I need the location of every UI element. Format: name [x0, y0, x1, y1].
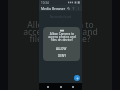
button[interactable]: ALLOW [43, 46, 80, 51]
staticText: 10:34 [41, 1, 49, 5]
staticText: No media found [50, 15, 72, 19]
staticText: DENY [58, 54, 66, 58]
button[interactable]: Filter [71, 6, 76, 11]
staticText: ALLOW [56, 47, 67, 51]
button[interactable]: Recents [70, 84, 76, 90]
staticText: files on device? [29, 33, 91, 45]
button[interactable]: More options [76, 6, 81, 11]
staticText: Allow Camera to access photos and files … [48, 32, 76, 42]
button[interactable]: DENY [43, 53, 80, 58]
button[interactable]: Home [58, 84, 64, 90]
staticText: access photos and [23, 26, 98, 38]
button[interactable]: Add [74, 75, 80, 81]
staticText: Media Browser [41, 6, 66, 11]
button[interactable]: Back [45, 84, 51, 90]
staticText: Allow Camera to [27, 19, 94, 31]
button[interactable]: Search [66, 6, 71, 11]
